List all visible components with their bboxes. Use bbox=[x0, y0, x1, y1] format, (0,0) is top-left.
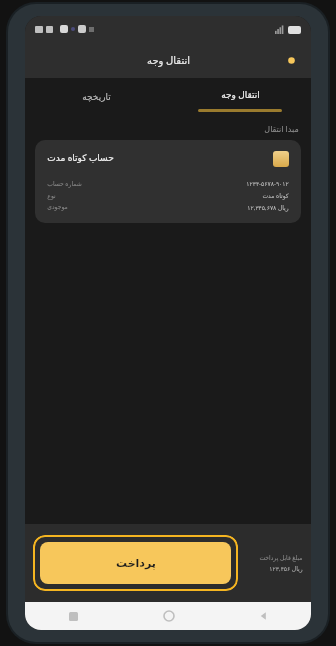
staticText: نوع bbox=[47, 192, 56, 199]
staticText: ۱۲۳,۴۵۶ ریال bbox=[269, 565, 303, 573]
staticText: موجودی bbox=[47, 203, 68, 210]
button[interactable]: تاریخچه bbox=[25, 78, 168, 115]
staticText: ۱۲۳۴-۵۶۷۸-۹۰۱۲ bbox=[246, 180, 289, 188]
button[interactable]: انتقال وجه bbox=[168, 78, 311, 115]
button[interactable]: More options bbox=[280, 49, 302, 71]
button[interactable]: حساب کوتاه مدت bbox=[35, 140, 301, 223]
staticText: انتقال وجه bbox=[147, 53, 190, 67]
button[interactable]: Back bbox=[216, 602, 311, 630]
staticText: حساب کوتاه مدت bbox=[47, 151, 114, 163]
button[interactable]: Home bbox=[121, 602, 216, 630]
staticText: شماره حساب bbox=[47, 180, 82, 188]
button[interactable]: پرداخت bbox=[40, 542, 231, 584]
staticText: مبدا انتقال bbox=[264, 123, 299, 134]
staticText: مبلغ قابل پرداخت bbox=[259, 554, 303, 562]
staticText: کوتاه مدت bbox=[262, 192, 289, 200]
staticText: پرداخت bbox=[116, 557, 156, 570]
staticText: انتقال وجه bbox=[221, 88, 260, 100]
button[interactable]: Recent apps bbox=[25, 602, 121, 630]
staticText: ۱۲,۳۴۵,۶۷۸ ریال bbox=[247, 204, 289, 212]
staticText: تاریخچه bbox=[82, 92, 111, 102]
